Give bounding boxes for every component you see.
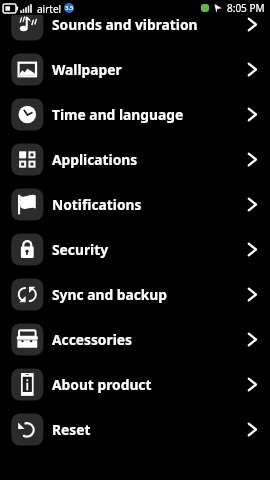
button[interactable]: Sounds and vibration bbox=[0, 2, 270, 47]
button[interactable]: Wallpaper bbox=[0, 47, 270, 92]
button[interactable]: About product bbox=[0, 362, 270, 407]
staticText: Accessories bbox=[52, 330, 132, 349]
button[interactable]: Accessories bbox=[0, 317, 270, 362]
staticText: Time and language bbox=[52, 105, 184, 124]
button[interactable]: Reset bbox=[0, 407, 270, 452]
staticText: 8:05 PM bbox=[227, 1, 265, 15]
staticText: airtel bbox=[37, 2, 62, 16]
button[interactable]: Security bbox=[0, 227, 270, 272]
staticText: Wallpaper bbox=[52, 60, 122, 79]
staticText: Notifications bbox=[52, 195, 142, 214]
staticText: Security bbox=[52, 240, 109, 259]
button[interactable]: Applications bbox=[0, 137, 270, 182]
staticText: 3.5 bbox=[65, 4, 74, 12]
button[interactable]: Time and language bbox=[0, 92, 270, 137]
button[interactable]: Notifications bbox=[0, 182, 270, 227]
staticText: Reset bbox=[52, 420, 91, 439]
staticText: Sync and backup bbox=[52, 285, 168, 304]
button[interactable]: Sync and backup bbox=[0, 272, 270, 317]
staticText: Applications bbox=[52, 150, 138, 169]
staticText: Sounds and vibration bbox=[52, 15, 198, 34]
staticText: About product bbox=[52, 375, 152, 394]
